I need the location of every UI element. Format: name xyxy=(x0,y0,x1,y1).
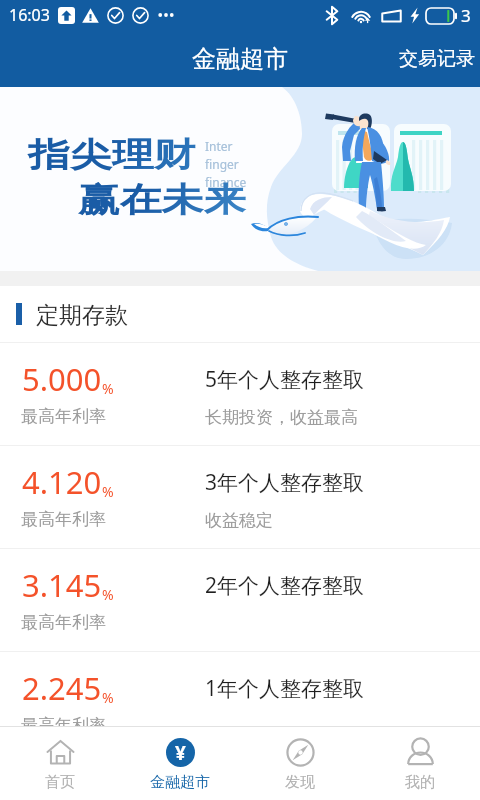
other: 发现 xyxy=(286,738,315,767)
staticText: 最高年利率 xyxy=(21,406,106,427)
staticText: Inter xyxy=(205,138,233,154)
staticText: % xyxy=(102,585,114,604)
staticText: 定期存款 xyxy=(36,301,128,330)
staticText: 2.245 xyxy=(22,667,102,709)
staticText: 首页 xyxy=(45,773,75,792)
staticText: 收益稳定 xyxy=(205,510,273,531)
staticText: 发现 xyxy=(285,773,315,792)
button[interactable]: 首页 xyxy=(0,727,120,800)
staticText: % xyxy=(102,482,114,501)
staticText: 4.120 xyxy=(22,461,102,503)
staticText: ¥ xyxy=(175,740,186,766)
staticText: 长期投资，收益最高 xyxy=(205,407,358,428)
staticText: 我的 xyxy=(405,773,435,792)
staticText: 5年个人整存整取 xyxy=(205,365,365,394)
button[interactable]: 发现 xyxy=(240,727,360,800)
button[interactable]: 3.145 xyxy=(0,549,480,652)
staticText: 5.000 xyxy=(22,358,102,400)
staticText: 金融超市 xyxy=(192,44,288,74)
staticText: % xyxy=(102,688,114,707)
button[interactable]: 我的 xyxy=(360,727,480,800)
staticText: 最高年利率 xyxy=(21,509,106,530)
button[interactable]: 4.120 xyxy=(0,446,480,549)
button[interactable]: 5.000 xyxy=(0,343,480,446)
staticText: finger xyxy=(205,156,239,172)
staticText: 1年个人整存整取 xyxy=(205,674,365,703)
button[interactable]: ¥ xyxy=(120,727,240,800)
other: 我的 xyxy=(406,738,435,767)
button[interactable]: 交易记录 xyxy=(385,30,480,87)
staticText: 3.145 xyxy=(22,564,102,606)
staticText: 3年个人整存整取 xyxy=(205,468,365,497)
staticText: % xyxy=(102,379,114,398)
staticText: 2年个人整存整取 xyxy=(205,571,365,600)
staticText: 最高年利率 xyxy=(21,715,106,736)
staticText: 赢在未来 xyxy=(78,179,246,221)
staticText: finance xyxy=(205,174,247,190)
staticText: 最高年利率 xyxy=(21,612,106,633)
button[interactable]: 2.245 xyxy=(0,652,480,726)
staticText: 交易记录 xyxy=(399,47,475,71)
staticText: 指尖理财 xyxy=(28,134,196,176)
staticText: 金融超市 xyxy=(150,773,210,792)
staticText: 3 xyxy=(461,4,471,27)
staticText: 16:03 xyxy=(9,4,50,26)
